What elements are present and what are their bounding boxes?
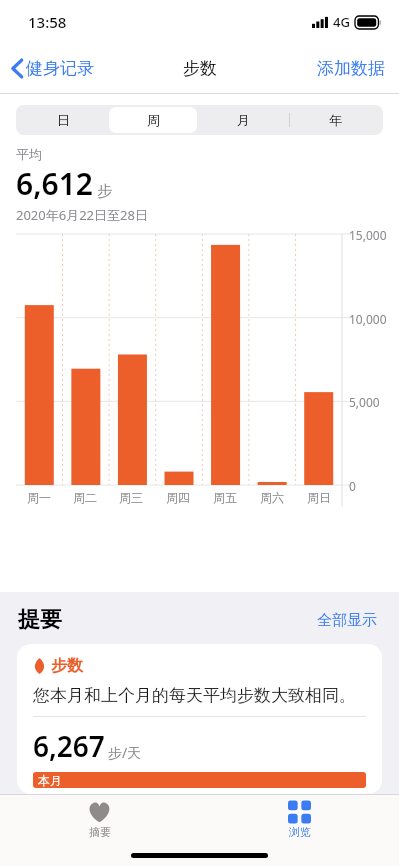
staticText: 13:58 [28, 12, 67, 32]
staticText: 添加数据 [317, 58, 385, 79]
staticText: 10,000 [349, 311, 387, 327]
staticText: 周 [147, 112, 160, 128]
staticText: 5,000 [349, 394, 380, 410]
staticText: 步数 [51, 656, 83, 676]
staticText: 提要 [18, 606, 62, 634]
staticText: 4G [333, 13, 350, 31]
staticText: 步数 [183, 58, 217, 79]
staticText: 2020年6月22日至28日 [16, 206, 148, 224]
staticText: 浏览 [289, 825, 311, 839]
staticText: 15,000 [349, 227, 387, 243]
staticText: 摘要 [89, 825, 111, 839]
staticText: 年 [329, 112, 342, 128]
button[interactable]: 浏览 [199, 795, 399, 845]
staticText: 周日 [307, 490, 331, 505]
staticText: 0 [349, 478, 356, 494]
staticText: 周六 [260, 490, 284, 505]
staticText: 日 [57, 112, 70, 128]
button[interactable]: 日 [19, 107, 107, 133]
staticText: 周四 [166, 490, 190, 505]
staticText: 步/天 [108, 743, 142, 762]
button[interactable]: 年 [291, 107, 380, 133]
staticText: 周二 [73, 490, 97, 505]
button[interactable]: 添加数据 [313, 52, 389, 85]
button[interactable]: 步数 [17, 644, 382, 794]
staticText: 本月 [38, 773, 62, 788]
staticText: 6,267 [33, 727, 105, 765]
staticText: 周三 [119, 490, 143, 505]
button[interactable]: 全部显示 [313, 607, 381, 634]
button[interactable]: 周 [109, 107, 197, 133]
staticText: 步 [97, 182, 112, 201]
staticText: 周一 [27, 490, 51, 505]
staticText: 平均 [16, 146, 42, 162]
button[interactable]: 摘要 [0, 795, 199, 845]
staticText: 您本月和上个月的每天平均步数大致相同。 [33, 685, 356, 706]
button[interactable]: 健身记录 [8, 52, 98, 85]
staticText: 6,612 [16, 163, 94, 204]
staticText: 健身记录 [26, 58, 94, 79]
staticText: 全部显示 [317, 611, 377, 630]
staticText: 月 [237, 112, 250, 128]
button[interactable]: 月 [199, 107, 288, 133]
staticText: 周五 [213, 490, 237, 505]
